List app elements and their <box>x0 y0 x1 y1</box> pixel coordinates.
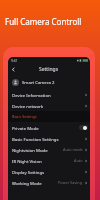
staticText: 9:41 <box>11 59 18 63</box>
button[interactable]: Private Mode <box>8 122 90 133</box>
staticText: Working Mode <box>12 180 42 186</box>
button[interactable]: Device Information <box>8 89 90 100</box>
staticText: Full Camera Controll <box>5 16 82 27</box>
staticText: Device Information <box>12 92 51 98</box>
staticText: IR Night Vision <box>12 158 42 164</box>
button[interactable]: Back <box>8 64 19 75</box>
staticText: Device network <box>12 103 44 109</box>
staticText: Basic Settings <box>12 114 37 119</box>
staticText: Settings <box>39 66 59 73</box>
button[interactable]: Device network <box>8 100 90 111</box>
staticText: Auto <box>74 158 83 163</box>
button[interactable]: Nightvision Mode <box>8 144 90 155</box>
button[interactable]: Display Settings <box>8 166 90 177</box>
staticText: Basic Function Settings <box>12 136 59 142</box>
staticText: Smart Camera 2 <box>22 79 55 85</box>
staticText: Display Settings <box>12 169 45 175</box>
staticText: Auto mode <box>63 147 83 152</box>
button[interactable]: Working Mode <box>8 177 90 188</box>
staticText: Private Mode <box>12 125 39 131</box>
button[interactable]: IR Night Vision <box>8 155 90 166</box>
staticText: Nightvision Mode <box>12 147 48 153</box>
button[interactable]: Basic Function Settings <box>8 133 90 144</box>
staticText: Power Saving <box>58 180 83 185</box>
button[interactable]: Smart Camera 2 <box>8 75 90 89</box>
